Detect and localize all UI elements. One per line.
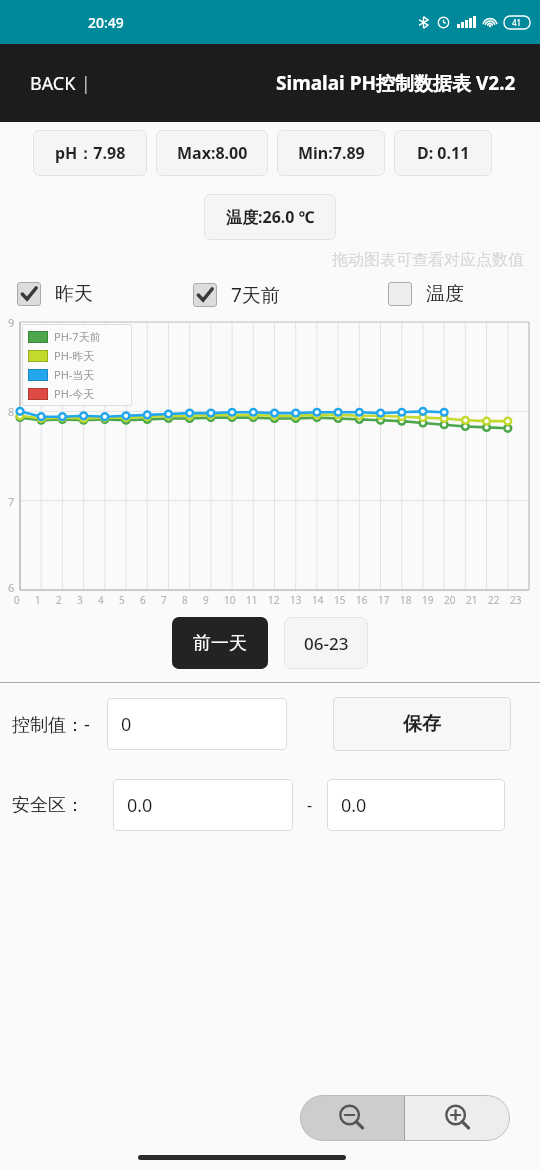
button[interactable]: 保存 xyxy=(333,697,511,751)
staticText: Min:7.89 xyxy=(298,142,365,164)
staticText: | xyxy=(76,71,91,96)
staticText: 5 xyxy=(119,593,125,607)
button[interactable]: 温度:26.0 ℃ xyxy=(204,194,336,240)
staticText: 22 xyxy=(488,593,500,607)
button[interactable]: pH：7.98 xyxy=(33,130,147,176)
staticText: 9 xyxy=(203,593,209,607)
button[interactable]: 0.0 xyxy=(113,779,293,831)
button[interactable]: Max:8.00 xyxy=(156,130,268,176)
staticText: BACK xyxy=(30,71,76,96)
staticText: - xyxy=(307,794,313,816)
staticText: 7天前 xyxy=(231,282,280,308)
staticText: 9 xyxy=(8,315,15,330)
button[interactable]: Min:7.89 xyxy=(277,130,385,176)
staticText: D: 0.11 xyxy=(417,142,470,164)
staticText: 昨天 xyxy=(55,282,93,306)
button[interactable]: BACK xyxy=(26,67,95,100)
staticText: 7 xyxy=(161,593,167,607)
staticText: 温度:26.0 ℃ xyxy=(226,206,315,228)
staticText: 温度 xyxy=(426,282,464,306)
staticText: 20 xyxy=(444,593,456,607)
staticText: PH-昨天 xyxy=(54,348,95,363)
staticText: 1 xyxy=(35,593,41,607)
staticText: 0 xyxy=(14,593,20,607)
button[interactable]: 前一天 xyxy=(172,617,268,669)
button[interactable]: 06-23 xyxy=(284,617,368,669)
button[interactable]: Zoom in xyxy=(405,1095,510,1141)
staticText: Max:8.00 xyxy=(177,142,248,164)
button[interactable]: 温度 xyxy=(388,278,464,310)
staticText: PH-当天 xyxy=(54,367,95,382)
button[interactable]: 7天前 xyxy=(193,278,280,312)
staticText: 8 xyxy=(8,404,15,419)
staticText: 0 xyxy=(121,712,132,737)
staticText: Simalai PH控制数据表 V2.2 xyxy=(276,70,516,96)
staticText: 17 xyxy=(378,593,390,607)
staticText: 06-23 xyxy=(304,632,349,655)
staticText: 19 xyxy=(422,593,434,607)
button[interactable]: D: 0.11 xyxy=(394,130,492,176)
staticText: 12 xyxy=(268,593,280,607)
staticText: 23 xyxy=(510,593,522,607)
staticText: 安全区： xyxy=(12,794,84,817)
staticText: 控制值：- xyxy=(12,712,90,737)
staticText: 20:49 xyxy=(88,13,124,32)
staticText: 6 xyxy=(8,580,15,595)
staticText: 7 xyxy=(8,494,15,509)
staticText: 4 xyxy=(98,593,104,607)
staticText: 18 xyxy=(400,593,412,607)
staticText: 14 xyxy=(312,593,324,607)
staticText: 41 xyxy=(512,17,522,28)
staticText: PH-今天 xyxy=(54,386,95,401)
staticText: 15 xyxy=(334,593,346,607)
staticText: 13 xyxy=(290,593,302,607)
button[interactable]: 0 xyxy=(107,698,287,750)
button[interactable]: 昨天 xyxy=(17,278,93,310)
button[interactable]: Zoom out xyxy=(300,1095,404,1141)
staticText: 0.0 xyxy=(341,793,367,818)
staticText: 21 xyxy=(466,593,478,607)
staticText: 8 xyxy=(182,593,188,607)
staticText: 16 xyxy=(356,593,368,607)
staticText: 11 xyxy=(246,593,258,607)
staticText: 2 xyxy=(56,593,62,607)
staticText: 前一天 xyxy=(193,632,247,655)
staticText: 6 xyxy=(140,593,146,607)
button[interactable]: 0.0 xyxy=(327,779,505,831)
staticText: 3 xyxy=(77,593,83,607)
staticText: PH-7天前 xyxy=(54,329,101,344)
staticText: 拖动图表可查看对应点数值 xyxy=(0,250,524,270)
staticText: 保存 xyxy=(403,712,441,736)
staticText: 0.0 xyxy=(127,793,153,818)
staticText: 10 xyxy=(224,593,236,607)
staticText: pH：7.98 xyxy=(55,142,126,164)
